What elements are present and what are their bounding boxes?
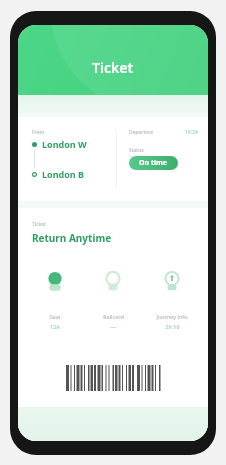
staticText: Departure — [129, 129, 154, 136]
button[interactable]: Seat reservation — [27, 267, 83, 332]
staticText: Status — [129, 147, 144, 154]
button[interactable]: Ticket barcode — [66, 365, 161, 391]
staticText: — — [110, 323, 116, 330]
staticText: Journey info — [156, 313, 188, 320]
staticText: 10:24 — [185, 129, 198, 136]
staticText: Railcard — [103, 313, 124, 320]
button[interactable]: Railcard — [85, 267, 141, 332]
staticText: London W — [42, 138, 87, 150]
staticText: Seat — [49, 313, 61, 320]
staticText: 2h 10 — [165, 323, 180, 330]
button[interactable]: From — [18, 117, 208, 201]
staticText: Ticket — [92, 58, 134, 77]
staticText: From — [32, 129, 45, 136]
button[interactable]: Journey info — [144, 267, 200, 332]
staticText: Return Anytime — [32, 231, 112, 245]
staticText: London B — [42, 168, 84, 180]
button[interactable]: On time — [129, 156, 178, 170]
staticText: On time — [139, 158, 168, 168]
staticText: Ticket — [32, 221, 46, 228]
staticText: 12A — [50, 323, 60, 330]
